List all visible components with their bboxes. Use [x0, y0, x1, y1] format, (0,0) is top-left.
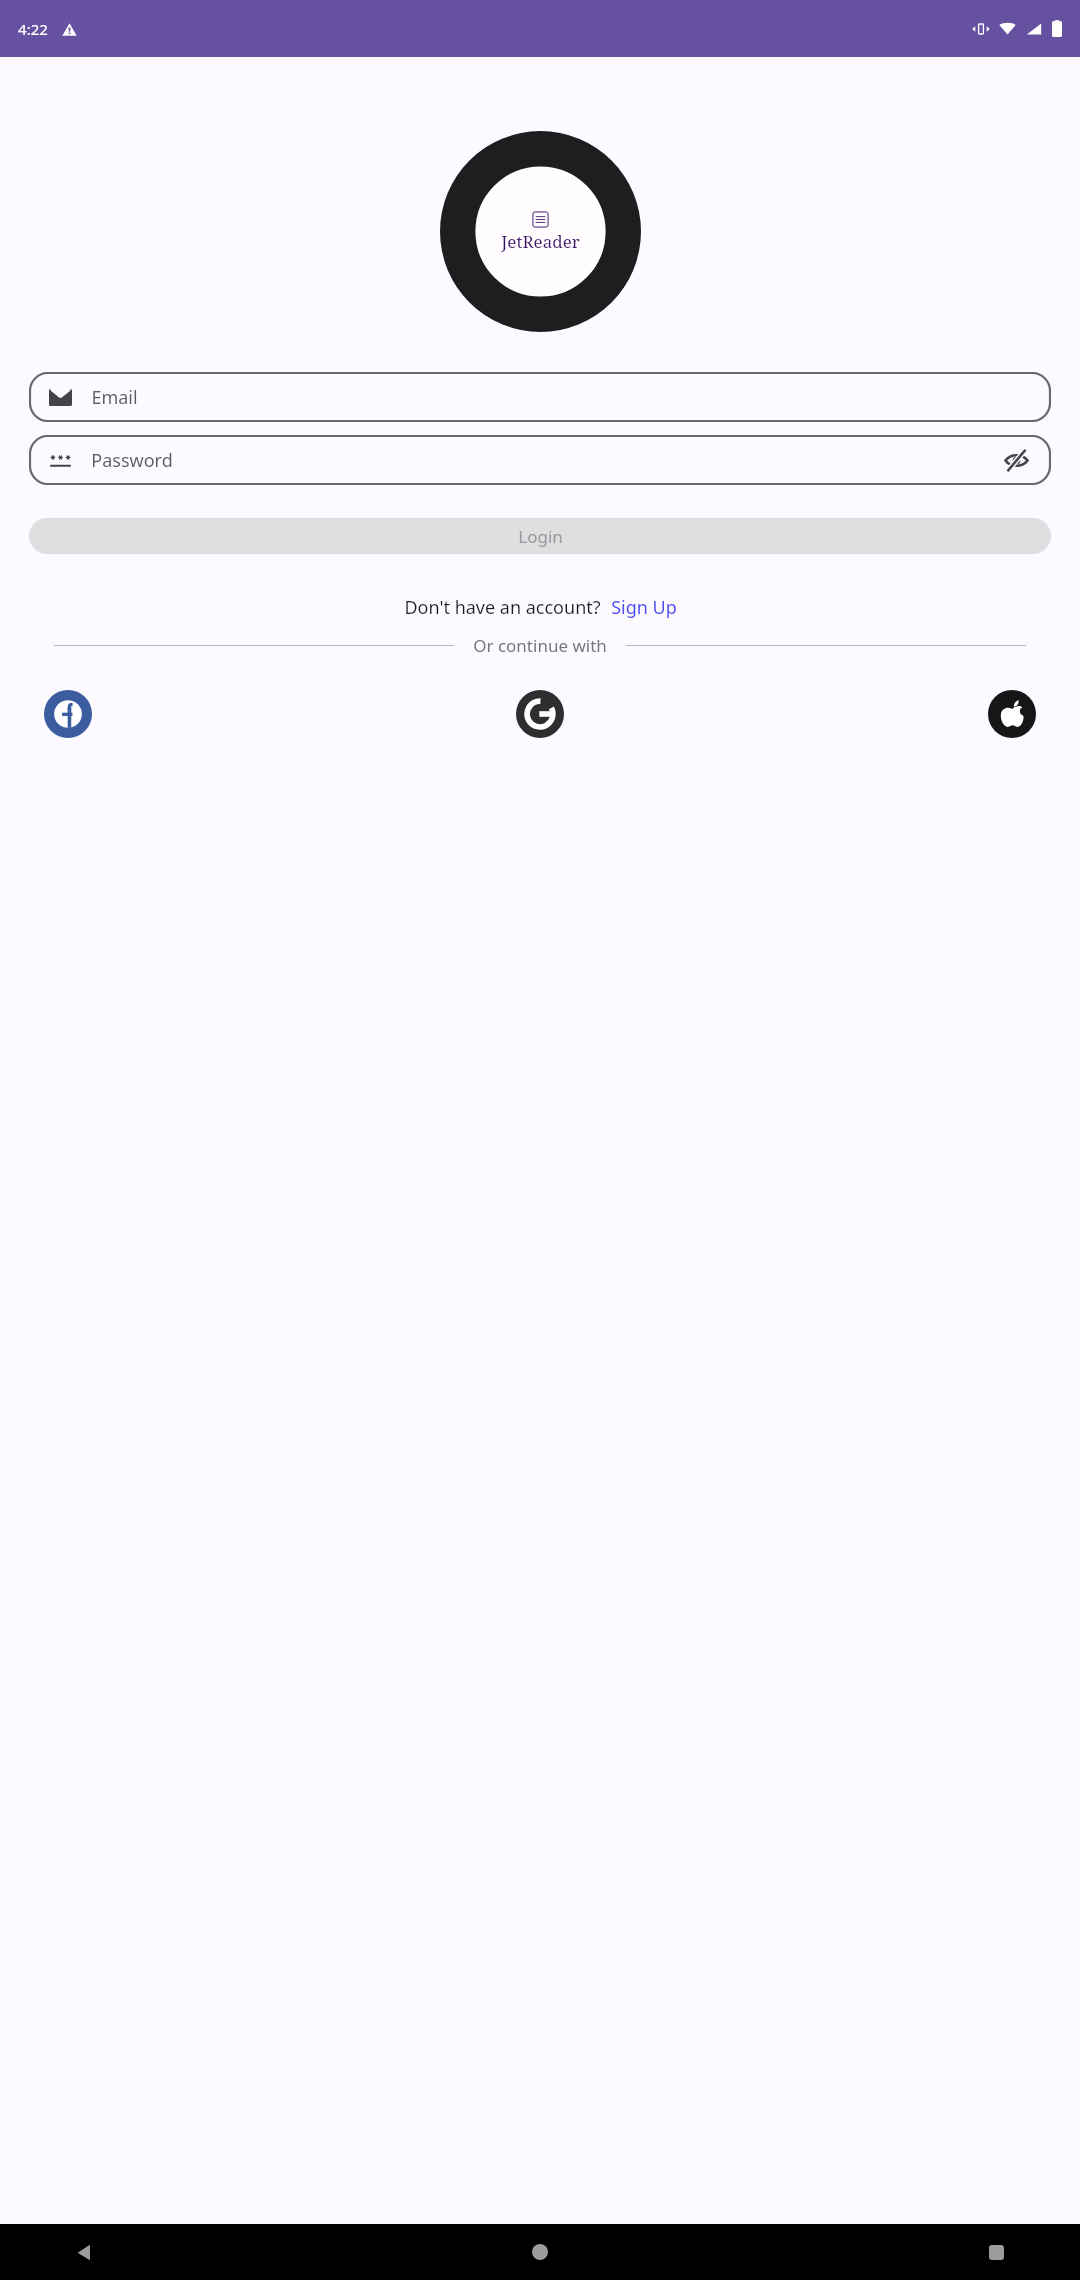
button[interactable]: Email	[29, 372, 1051, 422]
staticText: JetReader	[501, 230, 580, 253]
button[interactable]: Back	[62, 2230, 106, 2274]
staticText: 4:22	[18, 19, 48, 39]
button[interactable]: Sign Up	[611, 595, 677, 620]
button[interactable]: Sign in with Google	[516, 690, 564, 738]
button[interactable]: Recents	[974, 2230, 1018, 2274]
staticText: Login	[518, 525, 563, 548]
button[interactable]: Password	[29, 435, 1051, 485]
staticText: Or continue with	[473, 634, 607, 657]
button[interactable]: Home	[518, 2230, 562, 2274]
button[interactable]: Sign in with Facebook	[44, 690, 92, 738]
staticText: Don't have an account?	[404, 595, 601, 620]
staticText: Sign Up	[611, 595, 677, 620]
button[interactable]: Show password	[1001, 445, 1031, 475]
staticText: Password	[91, 448, 173, 473]
button[interactable]: Sign in with Apple	[988, 690, 1036, 738]
button[interactable]: Login	[29, 518, 1051, 554]
staticText: Email	[91, 385, 138, 410]
